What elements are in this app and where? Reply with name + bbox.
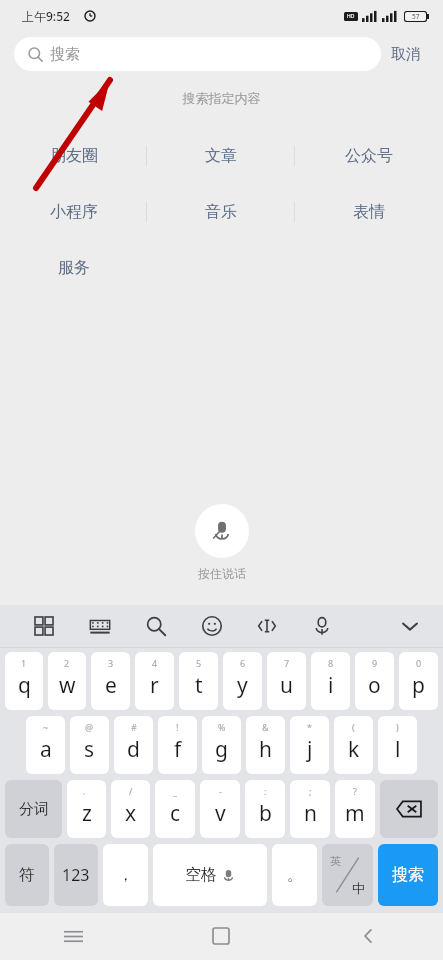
button[interactable]: 音乐	[191, 194, 251, 230]
staticText: b	[259, 799, 272, 828]
button[interactable]: )	[378, 716, 417, 774]
button[interactable]: English Chinese switch	[322, 844, 373, 906]
button[interactable]: 。	[272, 844, 317, 906]
button[interactable]: Recents	[0, 912, 147, 960]
button[interactable]: Voice	[294, 605, 349, 647]
button[interactable]: 朋友圈	[36, 138, 112, 174]
staticText: HD	[347, 13, 355, 20]
staticText: 6	[240, 657, 246, 669]
button[interactable]: Hide keyboard	[393, 609, 427, 643]
staticText: y	[237, 671, 248, 700]
staticText: 。	[287, 866, 302, 885]
button[interactable]: 6	[223, 652, 262, 710]
staticText: (	[352, 721, 355, 733]
staticText: -	[219, 785, 222, 797]
button[interactable]: Clipboard	[239, 605, 294, 647]
staticText: p	[412, 671, 425, 700]
button[interactable]: ，	[103, 844, 148, 906]
staticText: :	[264, 785, 267, 797]
button[interactable]: 8	[311, 652, 350, 710]
button[interactable]: @	[70, 716, 109, 774]
button[interactable]: 1	[5, 652, 43, 710]
button[interactable]: Emoji	[184, 605, 239, 647]
staticText: 57	[412, 12, 420, 21]
staticText: z	[82, 799, 92, 828]
button[interactable]: 公众号	[331, 138, 407, 174]
staticText: d	[127, 735, 140, 764]
staticText: 搜索指定内容	[0, 90, 443, 106]
staticText: t	[195, 671, 203, 700]
button[interactable]: 0	[399, 652, 438, 710]
button[interactable]: 2	[48, 652, 86, 710]
button[interactable]: 小程序	[36, 194, 112, 230]
staticText: 、	[82, 785, 91, 796]
button[interactable]: /	[111, 780, 150, 838]
button[interactable]: 表情	[339, 194, 399, 230]
button[interactable]: :	[245, 780, 285, 838]
button[interactable]: 3	[91, 652, 130, 710]
staticText: 空格	[185, 865, 217, 885]
button[interactable]: !	[158, 716, 197, 774]
staticText: )	[396, 721, 399, 733]
button[interactable]: 123	[54, 844, 98, 906]
button[interactable]: (	[334, 716, 373, 774]
staticText: 朋友圈	[50, 146, 98, 166]
button[interactable]: 分词	[5, 780, 62, 838]
button[interactable]: %	[202, 716, 241, 774]
button[interactable]: 搜索	[14, 37, 381, 71]
staticText: 表情	[353, 202, 385, 222]
button[interactable]: 按住说话	[195, 504, 249, 558]
staticText: v	[215, 799, 226, 828]
staticText: f	[174, 735, 182, 764]
staticText: 中	[352, 880, 365, 896]
staticText: #	[131, 721, 137, 733]
button[interactable]: 服务	[44, 250, 104, 286]
staticText: *	[307, 721, 312, 733]
staticText: ?	[353, 785, 357, 797]
staticText: 分词	[19, 800, 49, 819]
button[interactable]: 文章	[191, 138, 251, 174]
staticText: 9	[372, 657, 378, 669]
button[interactable]: 、	[67, 780, 106, 838]
staticText: g	[215, 735, 228, 764]
button[interactable]: 7	[267, 652, 306, 710]
staticText: s	[84, 735, 95, 764]
button[interactable]: -	[200, 780, 240, 838]
staticText: ，	[118, 866, 133, 885]
staticText: c	[170, 799, 181, 828]
button[interactable]: Keyboard	[72, 605, 128, 647]
button[interactable]: 9	[355, 652, 394, 710]
button[interactable]: &	[246, 716, 285, 774]
staticText: 上午9:52	[22, 8, 70, 24]
staticText: 4	[152, 657, 158, 669]
button[interactable]: Search	[128, 605, 184, 647]
staticText: n	[304, 799, 317, 828]
button[interactable]: Home	[147, 912, 295, 960]
button[interactable]: 空格	[153, 844, 267, 906]
button[interactable]: _	[155, 780, 195, 838]
button[interactable]: ~	[26, 716, 65, 774]
staticText: k	[348, 735, 360, 764]
button[interactable]: #	[114, 716, 153, 774]
staticText: h	[259, 735, 272, 764]
button[interactable]: Back	[295, 912, 443, 960]
button[interactable]: ?	[335, 780, 375, 838]
button[interactable]: *	[290, 716, 329, 774]
button[interactable]: 取消	[381, 39, 431, 70]
button[interactable]: ;	[290, 780, 330, 838]
button[interactable]: 搜索	[378, 844, 438, 906]
staticText: q	[18, 671, 31, 700]
staticText: ;	[309, 785, 312, 797]
staticText: 文章	[205, 146, 237, 166]
button[interactable]: Panels	[16, 605, 72, 647]
button[interactable]: Backspace	[380, 780, 438, 838]
button[interactable]: 符	[5, 844, 49, 906]
staticText: w	[59, 671, 76, 700]
staticText: %	[218, 721, 226, 733]
button[interactable]: 5	[179, 652, 218, 710]
staticText: 0	[416, 657, 422, 669]
button[interactable]: 4	[135, 652, 174, 710]
staticText: 5	[196, 657, 202, 669]
staticText: 3	[108, 657, 114, 669]
staticText: 搜索	[392, 865, 424, 885]
